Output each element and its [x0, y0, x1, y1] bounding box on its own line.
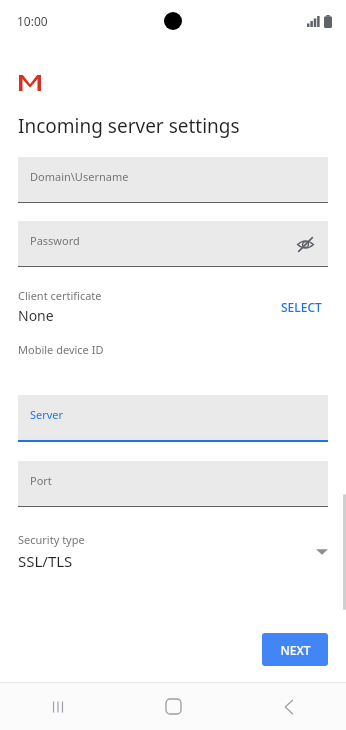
- staticText: Security type: [18, 532, 85, 547]
- button[interactable]: NEXT: [262, 633, 328, 666]
- staticText: Server: [30, 407, 64, 422]
- button[interactable]: Home: [116, 683, 231, 730]
- button[interactable]: SELECT: [275, 293, 328, 321]
- staticText: Domain\Username: [30, 169, 129, 184]
- button[interactable]: Port: [18, 461, 328, 506]
- staticText: Password: [30, 233, 80, 248]
- button[interactable]: Server: [18, 395, 328, 440]
- staticText: Client certificate: [18, 288, 102, 303]
- button[interactable]: Domain\Username: [18, 157, 328, 202]
- button[interactable]: Recent apps: [0, 683, 116, 730]
- staticText: NEXT: [280, 642, 311, 658]
- staticText: None: [18, 306, 54, 325]
- button[interactable]: Show password: [291, 230, 319, 258]
- button[interactable]: Security type: [0, 530, 346, 573]
- staticText: Mobile device ID: [18, 342, 104, 357]
- staticText: Incoming server settings: [18, 113, 240, 139]
- button[interactable]: Password: [18, 221, 328, 266]
- staticText: SELECT: [281, 299, 322, 315]
- staticText: Port: [30, 473, 52, 488]
- staticText: 10:00: [17, 13, 48, 29]
- button[interactable]: Back: [231, 683, 346, 730]
- staticText: SSL/TLS: [18, 551, 73, 571]
